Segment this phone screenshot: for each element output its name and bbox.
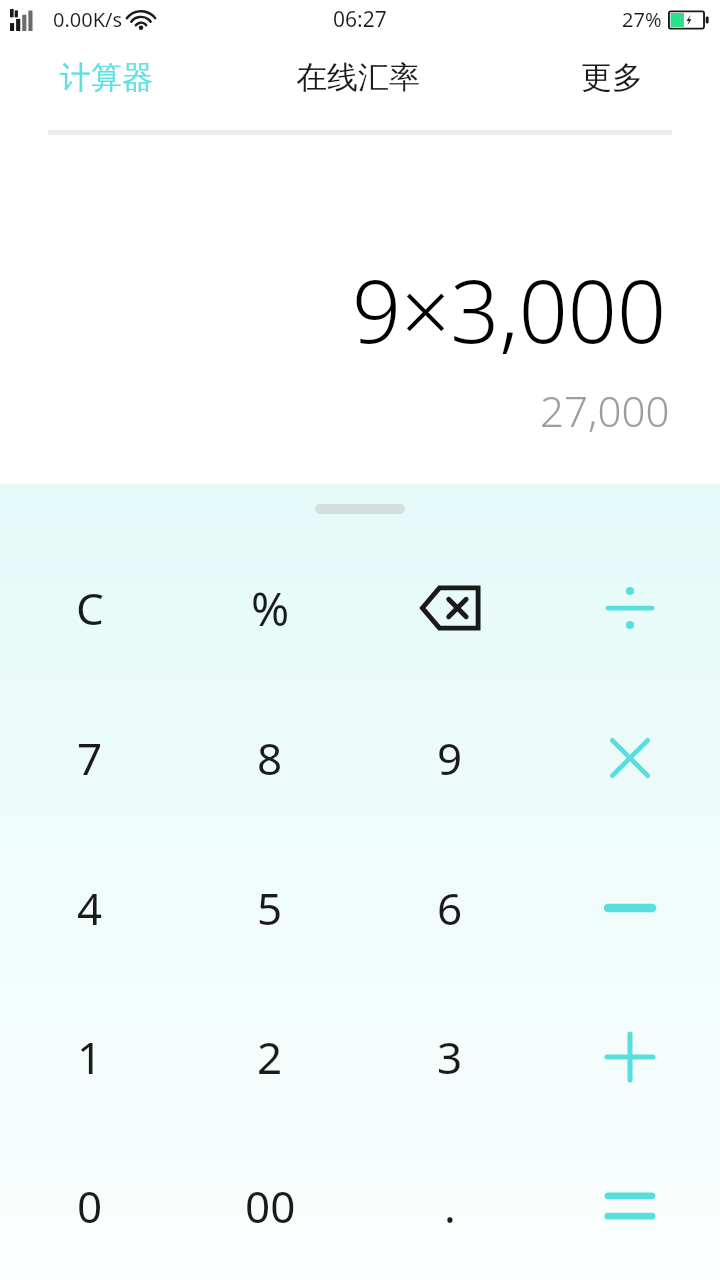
staticText: 6 (437, 878, 463, 938)
button[interactable]: Equals (540, 1131, 720, 1280)
staticText: 8 (257, 728, 283, 788)
staticText: 2 (257, 1027, 283, 1087)
button[interactable]: Minus (540, 833, 720, 982)
button[interactable]: 2 (180, 982, 360, 1131)
staticText: 27% (622, 6, 662, 33)
staticText: C (76, 578, 104, 638)
button[interactable]: 00 (180, 1131, 360, 1280)
staticText: 5 (257, 878, 283, 938)
button[interactable]: 计算器 (0, 38, 212, 116)
button[interactable]: 更多 (504, 38, 720, 116)
button[interactable]: 在线汇率 (212, 38, 504, 116)
staticText: 3 (437, 1027, 463, 1087)
staticText: 27,000 (540, 382, 670, 439)
staticText: 计算器 (60, 58, 153, 97)
button[interactable]: . (360, 1131, 540, 1280)
staticText: 9×3,000 (352, 251, 666, 368)
button[interactable]: 3 (360, 982, 540, 1131)
button[interactable]: 7 (0, 683, 180, 833)
button[interactable]: % (180, 533, 360, 683)
button[interactable]: Backspace (360, 533, 540, 683)
button[interactable]: 5 (180, 833, 360, 982)
staticText: 0 (77, 1176, 103, 1236)
button[interactable]: Divide (540, 533, 720, 683)
staticText: 1 (77, 1027, 103, 1087)
staticText: 更多 (581, 58, 643, 97)
staticText: 9 (437, 728, 463, 788)
button[interactable]: 8 (180, 683, 360, 833)
staticText: 4 (77, 878, 103, 938)
button[interactable]: Plus (540, 982, 720, 1131)
button[interactable]: Multiply (540, 683, 720, 833)
button[interactable]: C (0, 533, 180, 683)
staticText: 00 (245, 1176, 296, 1236)
staticText: 在线汇率 (296, 58, 420, 97)
button[interactable]: 6 (360, 833, 540, 982)
button[interactable]: 0 (0, 1131, 180, 1280)
staticText: % (251, 577, 290, 640)
staticText: 06:27 (333, 5, 387, 34)
button[interactable]: 4 (0, 833, 180, 982)
staticText: 0.00K/s (53, 6, 123, 33)
staticText: 7 (77, 728, 103, 788)
staticText: . (444, 1176, 456, 1236)
button[interactable]: 1 (0, 982, 180, 1131)
button[interactable]: 9 (360, 683, 540, 833)
